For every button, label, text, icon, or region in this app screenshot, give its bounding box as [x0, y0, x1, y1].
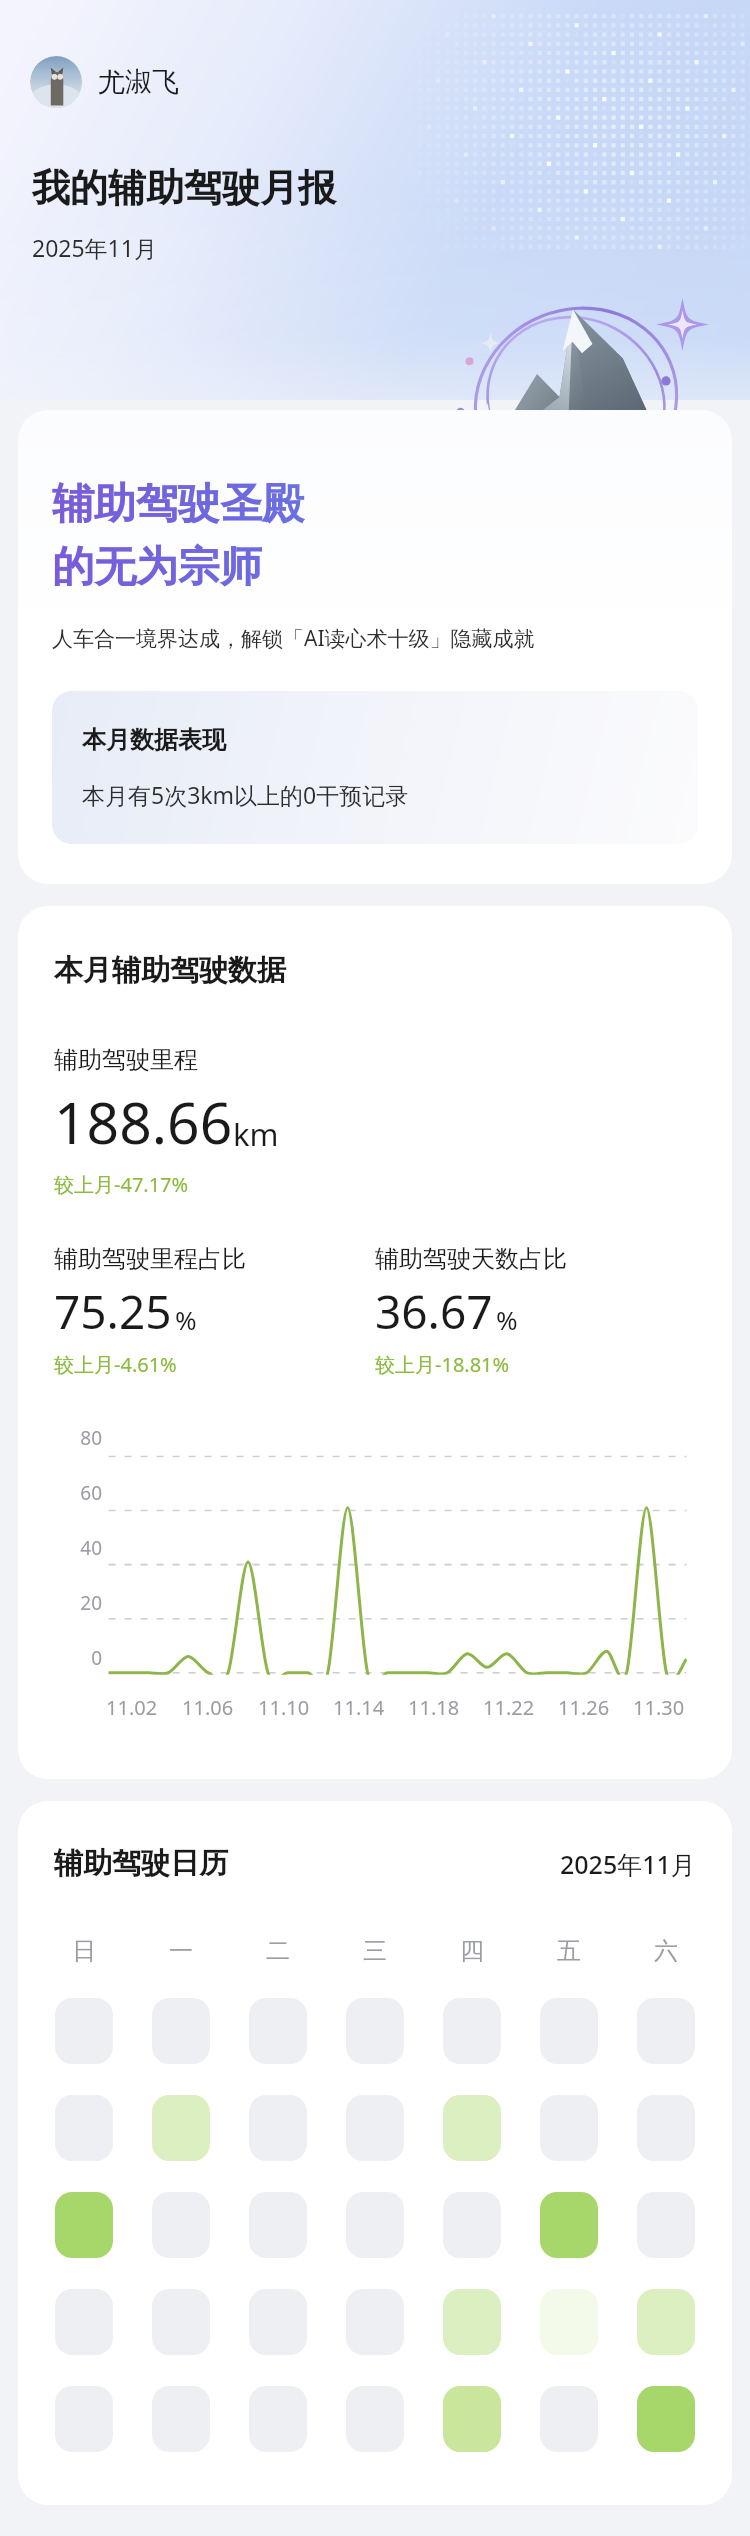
staticText: 80	[54, 1425, 102, 1451]
button[interactable]	[55, 2095, 113, 2161]
other: Profile photo	[30, 56, 82, 108]
staticText: 75.25	[54, 1280, 172, 1343]
staticText: 的无为宗师	[52, 541, 262, 594]
button[interactable]	[540, 2192, 598, 2258]
button[interactable]	[540, 2095, 598, 2161]
button[interactable]	[443, 2095, 501, 2161]
button[interactable]: 辅助驾驶圣殿	[18, 410, 732, 884]
staticText: 11.18	[408, 1694, 460, 1721]
staticText: 五	[557, 1936, 581, 1966]
button[interactable]	[55, 2386, 113, 2452]
button[interactable]	[249, 2386, 307, 2452]
staticText: 0	[54, 1645, 102, 1671]
staticText: 四	[460, 1936, 484, 1966]
staticText: 日	[72, 1936, 96, 1966]
staticText: 2025年11月	[32, 232, 157, 263]
button[interactable]	[55, 2192, 113, 2258]
staticText: 40	[54, 1535, 102, 1561]
staticText: 11.30	[633, 1694, 685, 1721]
button[interactable]	[443, 1998, 501, 2064]
staticText: 11.22	[483, 1694, 535, 1721]
button[interactable]	[443, 2386, 501, 2452]
button[interactable]	[346, 2289, 404, 2355]
button[interactable]	[152, 2386, 210, 2452]
staticText: %	[496, 1302, 518, 1337]
staticText: 本月数据表现	[82, 725, 226, 755]
staticText: %	[175, 1302, 197, 1337]
staticText: 11.06	[182, 1694, 234, 1721]
staticText: 辅助驾驶日历	[54, 1845, 228, 1882]
staticText: 人车合一境界达成，解锁「AI读心术十级」隐藏成就	[52, 624, 535, 653]
staticText: 本月辅助驾驶数据	[54, 952, 286, 989]
button[interactable]	[637, 2095, 695, 2161]
staticText: 三	[363, 1936, 387, 1966]
button[interactable]	[249, 2192, 307, 2258]
button[interactable]: 本月辅助驾驶数据	[18, 906, 732, 1779]
button[interactable]	[637, 2192, 695, 2258]
button[interactable]	[249, 1998, 307, 2064]
button[interactable]	[249, 2289, 307, 2355]
staticText: 11.14	[333, 1694, 385, 1721]
staticText: 辅助驾驶天数占比	[375, 1244, 567, 1274]
staticText: 二	[266, 1936, 290, 1966]
button[interactable]	[540, 2386, 598, 2452]
staticText: 11.10	[258, 1694, 310, 1721]
staticText: 较上月-47.17%	[54, 1171, 189, 1198]
button[interactable]	[637, 2289, 695, 2355]
button[interactable]: 本月数据表现	[52, 691, 698, 844]
button[interactable]	[637, 2386, 695, 2452]
button[interactable]	[152, 2289, 210, 2355]
button[interactable]	[55, 1998, 113, 2064]
staticText: 辅助驾驶里程占比	[54, 1244, 246, 1274]
button[interactable]: 辅助驾驶日历	[18, 1801, 732, 2505]
button[interactable]	[443, 2192, 501, 2258]
staticText: 较上月-4.61%	[54, 1351, 177, 1378]
button[interactable]: Profile photo	[30, 56, 193, 108]
staticText: 辅助驾驶圣殿	[52, 478, 304, 531]
staticText: 11.02	[106, 1694, 158, 1721]
staticText: 20	[54, 1590, 102, 1616]
staticText: 我的辅助驾驶月报	[32, 164, 336, 212]
staticText: 36.67	[375, 1280, 493, 1343]
staticText: 六	[654, 1936, 678, 1966]
staticText: 辅助驾驶里程	[54, 1045, 198, 1075]
button[interactable]	[152, 2192, 210, 2258]
button[interactable]	[443, 2289, 501, 2355]
button[interactable]	[540, 1998, 598, 2064]
staticText: 60	[54, 1480, 102, 1506]
button[interactable]	[540, 2289, 598, 2355]
staticText: 一	[169, 1936, 193, 1966]
button[interactable]	[152, 2095, 210, 2161]
button[interactable]	[346, 2192, 404, 2258]
staticText: 尤淑飞	[98, 65, 179, 99]
staticText: 较上月-18.81%	[375, 1351, 510, 1378]
staticText: km	[233, 1113, 279, 1155]
button[interactable]	[346, 2386, 404, 2452]
staticText: 11.26	[558, 1694, 610, 1721]
button[interactable]	[249, 2095, 307, 2161]
staticText: 本月有5次3km以上的0干预记录	[82, 779, 409, 810]
staticText: 188.66	[54, 1083, 233, 1161]
button[interactable]	[637, 1998, 695, 2064]
button[interactable]	[152, 1998, 210, 2064]
button[interactable]	[55, 2289, 113, 2355]
button[interactable]	[346, 1998, 404, 2064]
staticText: 2025年11月	[560, 1847, 696, 1881]
button[interactable]	[346, 2095, 404, 2161]
